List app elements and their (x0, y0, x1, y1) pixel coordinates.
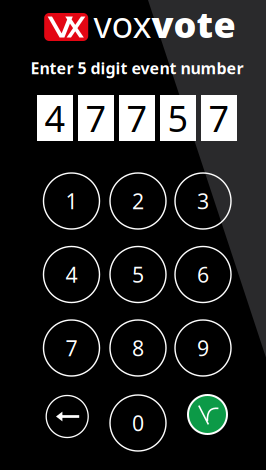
button[interactable]: Delete (46, 395, 88, 437)
button[interactable]: 2 (110, 173, 166, 229)
staticText: vote (151, 0, 235, 48)
staticText: 0 (132, 409, 144, 437)
staticText: 4 (65, 260, 77, 289)
staticText: 5 (167, 94, 188, 142)
button[interactable]: 4 (43, 246, 99, 302)
staticText: vox (93, 0, 151, 48)
button[interactable]: Submit (188, 395, 227, 434)
button[interactable]: 3 (175, 173, 231, 229)
staticText: 9 (197, 334, 209, 362)
staticText: 1 (65, 187, 77, 215)
button[interactable]: 7 (43, 320, 99, 376)
staticText: 7 (208, 94, 229, 142)
button[interactable]: 1 (43, 173, 99, 229)
staticText: Enter 5 digit event number (30, 57, 243, 79)
staticText: 5 (132, 260, 144, 289)
staticText: 7 (65, 334, 77, 362)
staticText: 2 (132, 187, 144, 215)
button[interactable]: 8 (110, 320, 166, 376)
button[interactable]: 6 (175, 246, 231, 302)
staticText: 7 (126, 94, 147, 142)
button[interactable]: 9 (175, 320, 231, 376)
staticText: 6 (197, 260, 209, 289)
staticText: 7 (85, 94, 106, 142)
button[interactable]: 0 (110, 395, 166, 451)
staticText: 4 (44, 94, 65, 142)
button[interactable]: 5 (110, 246, 166, 302)
staticText: 8 (132, 334, 144, 362)
staticText: 3 (197, 187, 209, 215)
